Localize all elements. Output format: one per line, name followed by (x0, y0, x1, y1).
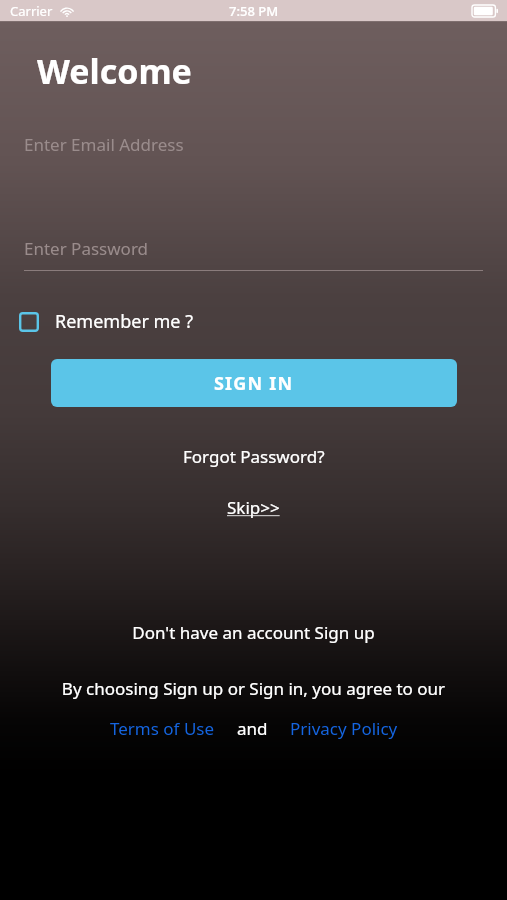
button[interactable]: Skip>> (219, 493, 288, 522)
button[interactable]: Remember me ? (19, 309, 193, 334)
button[interactable]: Privacy Policy (286, 714, 402, 743)
other: Wi-Fi signal (60, 6, 74, 17)
staticText: Enter Email Address (24, 133, 184, 156)
staticText: Skip>> (227, 496, 280, 519)
staticText: Enter Password (24, 237, 149, 260)
button[interactable]: Forgot Password? (175, 442, 333, 471)
button[interactable]: Don't have an account Sign up (124, 618, 383, 647)
staticText: Forgot Password? (183, 445, 325, 468)
staticText: Welcome (37, 48, 192, 94)
staticText: Remember me ? (55, 309, 193, 334)
staticText: Terms of Use (110, 717, 215, 740)
staticText: Carrier (10, 2, 53, 20)
staticText: 7:58 PM (229, 2, 279, 20)
staticText: By choosing Sign up or Sign in, you agre… (0, 677, 507, 700)
staticText: SIGN IN (214, 371, 294, 396)
button[interactable]: Terms of Use (106, 714, 219, 743)
other: Battery (472, 5, 498, 17)
staticText: Don't have an account Sign up (132, 621, 375, 644)
button[interactable]: Enter Password (0, 225, 507, 271)
staticText: and (237, 717, 268, 740)
button[interactable]: Enter Email Address (0, 121, 507, 167)
staticText: Privacy Policy (290, 717, 398, 740)
button[interactable]: SIGN IN (51, 359, 457, 407)
